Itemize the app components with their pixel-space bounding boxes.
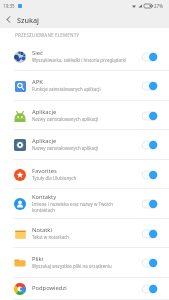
- staticText: Funkcje zainstalowanych aplikacji: [32, 86, 101, 92]
- staticText: Aplikacje: [32, 137, 57, 145]
- button[interactable]: Back: [0, 11, 17, 28]
- button[interactable]: Kontakty: [0, 189, 169, 219]
- staticText: 27%: [154, 3, 163, 9]
- button[interactable]: Sieć: [0, 42, 169, 71]
- staticText: Kontakty: [32, 193, 57, 201]
- staticText: Szukaj: [17, 15, 39, 25]
- staticText: Notatki: [32, 226, 52, 234]
- staticText: Nazwy zainstalowanych aplikacji: [32, 145, 99, 151]
- button[interactable]: Toggle: [142, 171, 157, 179]
- button[interactable]: Toggle: [142, 230, 157, 238]
- button[interactable]: Podpowiedzi: [0, 278, 169, 300]
- button[interactable]: Toggle: [142, 200, 157, 208]
- staticText: APK: [32, 78, 43, 86]
- staticText: Nazwy zainstalowanych aplikacji: [32, 116, 99, 122]
- staticText: Wyszukiwarka, zakładki i historia przegl…: [32, 57, 127, 63]
- button[interactable]: Toggle: [142, 141, 157, 149]
- button[interactable]: Toggle: [142, 259, 157, 267]
- staticText: Favorites: [32, 167, 57, 175]
- staticText: Tekst w notatkach: [32, 234, 70, 240]
- button[interactable]: Aplikacje: [0, 130, 169, 160]
- button[interactable]: APK: [0, 71, 169, 101]
- staticText: Wyszukaj wszystkie pliki na urządzeniu: [32, 263, 112, 269]
- button[interactable]: Toggle: [142, 285, 157, 293]
- button[interactable]: Toggle: [142, 112, 157, 120]
- staticText: 19:35: [3, 3, 15, 9]
- staticText: Imiona i nazwiska oraz nazwy w Twoich ko…: [32, 201, 128, 213]
- button[interactable]: Aplikacje: [0, 101, 169, 130]
- staticText: Podpowiedzi: [32, 284, 67, 292]
- button[interactable]: Pliki: [0, 248, 169, 278]
- button[interactable]: Notatki: [0, 219, 169, 248]
- staticText: PRZESZUKIWANE ELEMENTY: [15, 32, 80, 38]
- staticText: Sieć: [32, 49, 43, 57]
- staticText: Tytuły dla Ulubionych: [32, 175, 77, 181]
- button[interactable]: Toggle: [142, 53, 157, 61]
- button[interactable]: Toggle: [142, 82, 157, 90]
- button[interactable]: Favorites: [0, 160, 169, 189]
- staticText: Pliki: [32, 255, 44, 263]
- staticText: Aplikacje: [32, 108, 57, 116]
